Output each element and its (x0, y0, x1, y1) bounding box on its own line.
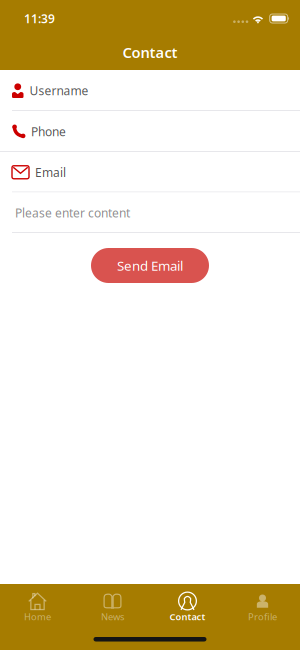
button[interactable]: Please enter content (0, 192, 300, 233)
button[interactable]: Profile (225, 584, 300, 624)
staticText: 11:39 (24, 10, 55, 26)
button[interactable]: Home (0, 584, 75, 624)
button[interactable]: Send Email (91, 248, 209, 283)
staticText: Email (35, 164, 66, 180)
staticText: News (101, 610, 124, 623)
button[interactable]: Phone (0, 111, 300, 152)
staticText: Contact (169, 610, 205, 623)
button[interactable]: Username (0, 70, 300, 111)
staticText: Profile (248, 610, 277, 623)
staticText: Username (29, 82, 88, 98)
staticText: Phone (31, 123, 66, 139)
staticText: Please enter content (15, 205, 130, 221)
staticText: Home (24, 610, 51, 623)
staticText: Send Email (117, 257, 183, 274)
staticText: Contact (122, 42, 177, 62)
button[interactable]: Contact (150, 584, 225, 624)
button[interactable]: News (75, 584, 150, 624)
button[interactable]: Email (0, 152, 300, 192)
